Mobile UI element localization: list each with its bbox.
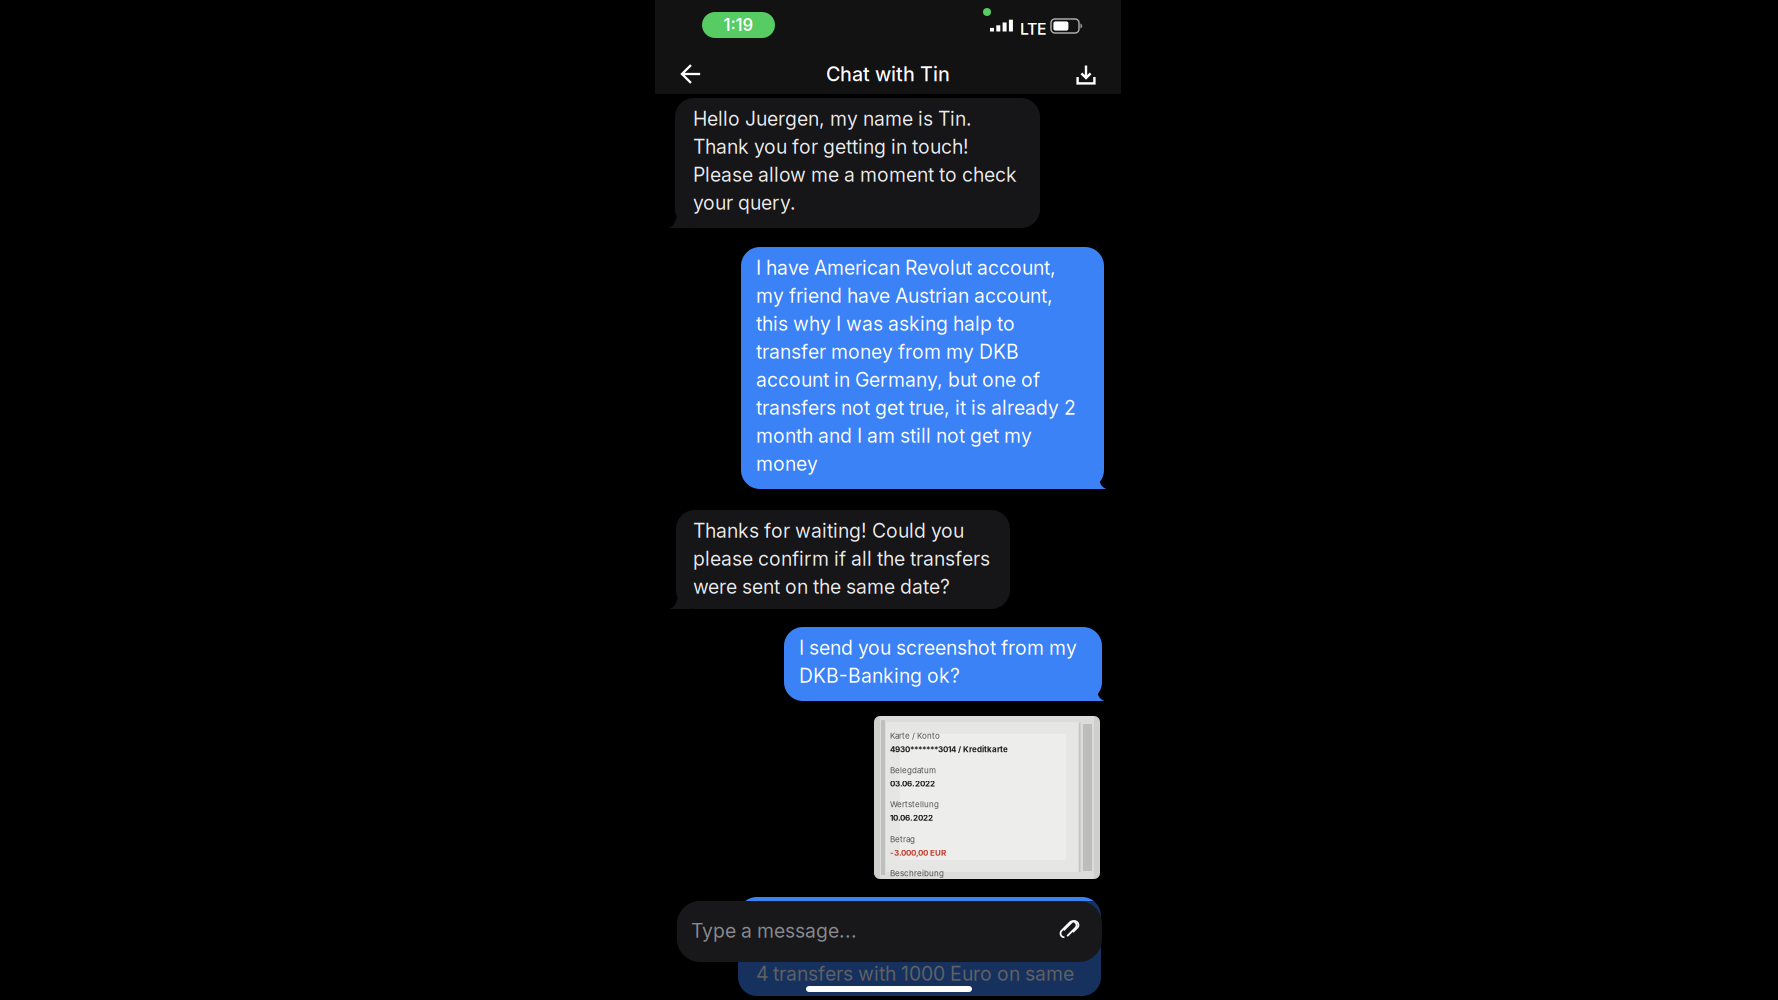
staticText: Yes all of them sent together, I checked… bbox=[756, 906, 1074, 985]
button[interactable]: Type a message... bbox=[677, 901, 1102, 962]
staticText: Chat with Tin bbox=[826, 62, 950, 86]
staticText: Hello Juergen, my name is Tin. Thank you… bbox=[693, 107, 1017, 214]
staticText: 10.06.2022 bbox=[890, 813, 933, 823]
staticText: 1:19 bbox=[723, 15, 753, 35]
staticText: Wertstellung bbox=[890, 800, 939, 809]
staticText: LTE bbox=[1020, 19, 1047, 38]
staticText: Betrag bbox=[890, 835, 915, 844]
staticText: Beschreibung bbox=[890, 869, 944, 878]
staticText: -3.000,00 EUR bbox=[890, 848, 946, 858]
staticText: I send you screenshot from my DKB-Bankin… bbox=[799, 636, 1077, 687]
staticText: Karte / Konto bbox=[890, 731, 940, 741]
staticText: 4930*******3014 / Kreditkarte bbox=[890, 744, 1008, 754]
button[interactable]: Back bbox=[668, 51, 714, 97]
staticText: 03.06.2022 bbox=[890, 779, 935, 788]
staticText: I have American Revolut account, my frie… bbox=[756, 256, 1076, 475]
button[interactable]: Save transcript bbox=[1063, 51, 1109, 97]
staticText: Belegdatum bbox=[890, 765, 936, 775]
staticText: Thanks for waiting! Could you please con… bbox=[693, 519, 990, 598]
staticText: Type a message... bbox=[691, 919, 857, 942]
